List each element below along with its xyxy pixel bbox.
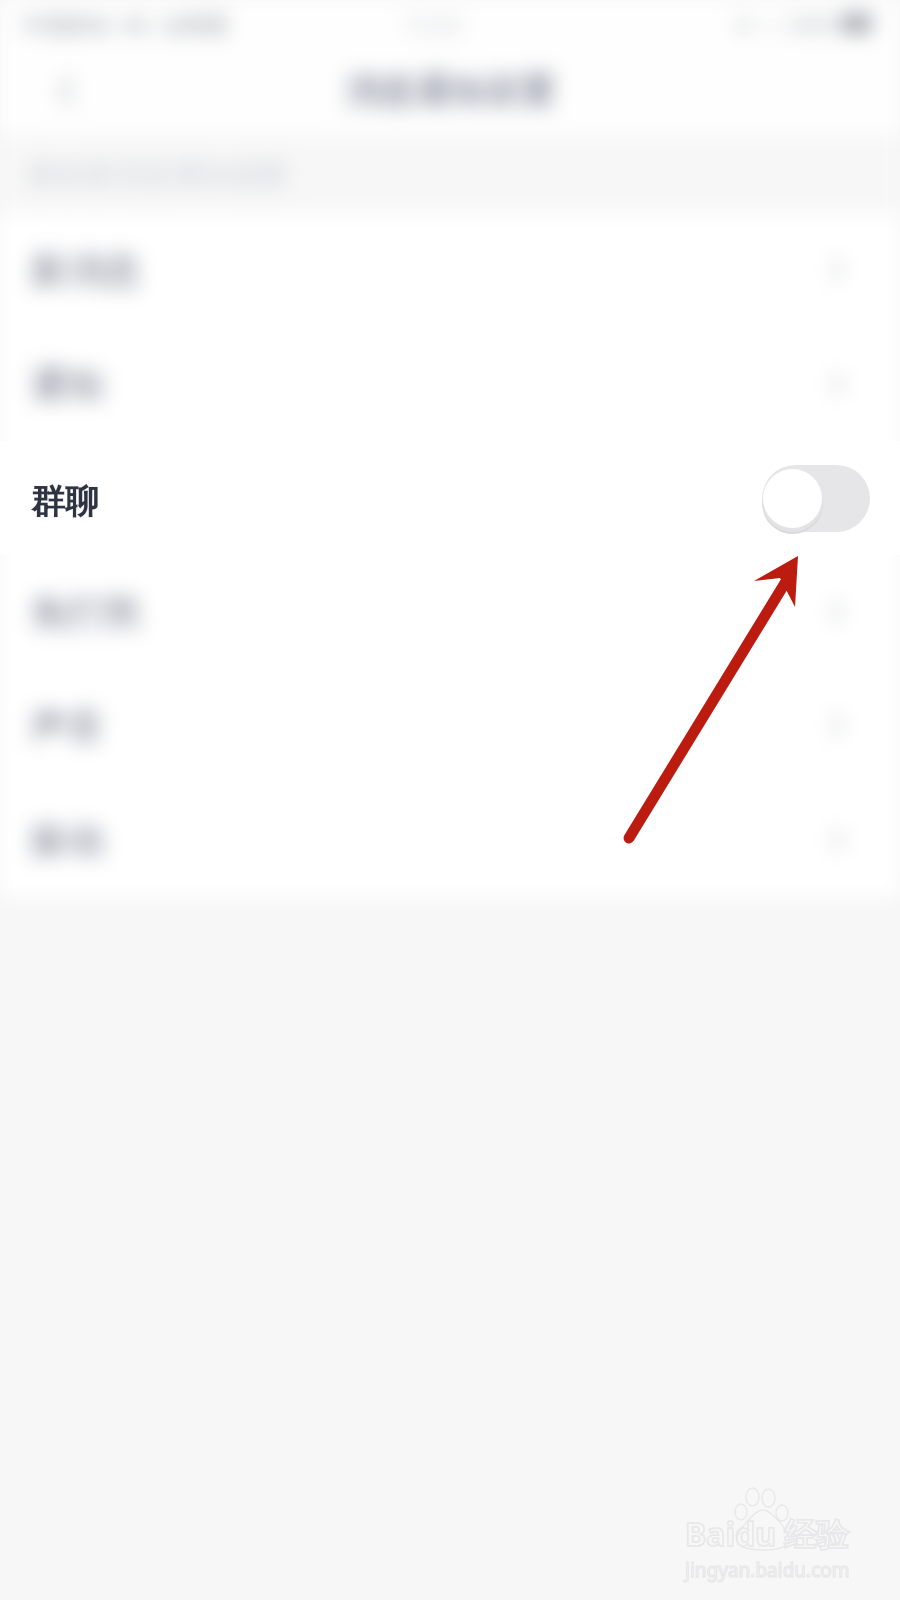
button[interactable]: 免打扰 <box>0 555 900 669</box>
staticText: 振动 <box>30 817 104 864</box>
staticText: 群聊 <box>31 480 99 523</box>
staticText: 声音 <box>30 703 104 750</box>
staticText: 消息通知设置 <box>345 69 555 113</box>
button[interactable]: 振动 <box>0 783 900 897</box>
button[interactable]: 群聊开关 <box>762 465 870 532</box>
staticText: jingyan.baidu.com <box>685 1557 850 1583</box>
staticText: 新消息 <box>30 247 141 294</box>
staticText: 免打扰 <box>30 589 141 636</box>
staticText: ≋ ⌁ 84% <box>735 9 834 39</box>
staticText: Baidu 经验 <box>685 1512 849 1556</box>
button[interactable]: 通知 <box>0 327 900 441</box>
staticText: 通知 <box>30 361 104 408</box>
button[interactable]: 群聊 <box>0 441 900 555</box>
button[interactable]: 新消息 <box>0 213 900 327</box>
staticText: 中国移动 4G 全网通 <box>22 9 228 39</box>
button[interactable]: 声音 <box>0 669 900 783</box>
